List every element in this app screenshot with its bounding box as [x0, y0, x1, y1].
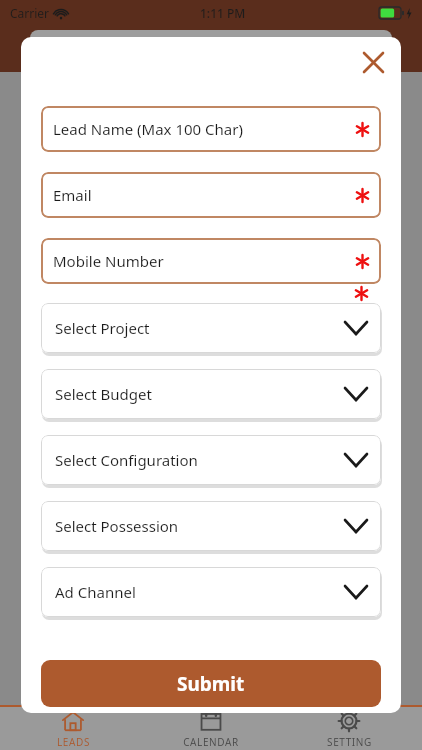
button[interactable]: Email	[41, 172, 381, 218]
button[interactable]: Mobile Number	[41, 238, 381, 284]
staticText: SETTING	[327, 735, 372, 747]
button[interactable]: SETTING	[284, 707, 414, 750]
button[interactable]: CALENDAR	[146, 707, 276, 750]
staticText: Email	[53, 185, 92, 205]
staticText: CALENDAR	[183, 735, 239, 747]
staticText: Select Project	[55, 318, 150, 338]
button[interactable]: Ad Channel	[41, 567, 381, 617]
button[interactable]: Lead Name (Max 100 Char)	[41, 106, 381, 152]
button[interactable]: Select Possession	[41, 501, 381, 551]
staticText: LEADS	[57, 735, 90, 747]
staticText: Ad Channel	[55, 582, 136, 602]
button[interactable]: Submit	[41, 660, 381, 707]
staticText: Mobile Number	[53, 251, 164, 271]
staticText: Select Budget	[55, 384, 152, 404]
button[interactable]: Select Budget	[41, 369, 381, 419]
button[interactable]: LEADS	[8, 707, 138, 750]
staticText: Lead Name (Max 100 Char)	[53, 119, 243, 139]
staticText: Select Possession	[55, 516, 179, 536]
button[interactable]: Close	[353, 42, 393, 82]
button[interactable]: Select Project	[41, 303, 381, 353]
staticText: 1:11 PM	[200, 5, 246, 21]
staticText: Carrier	[10, 5, 50, 21]
button[interactable]: Select Configuration	[41, 435, 381, 485]
staticText: Submit	[177, 671, 245, 697]
staticText: Select Configuration	[55, 450, 198, 470]
